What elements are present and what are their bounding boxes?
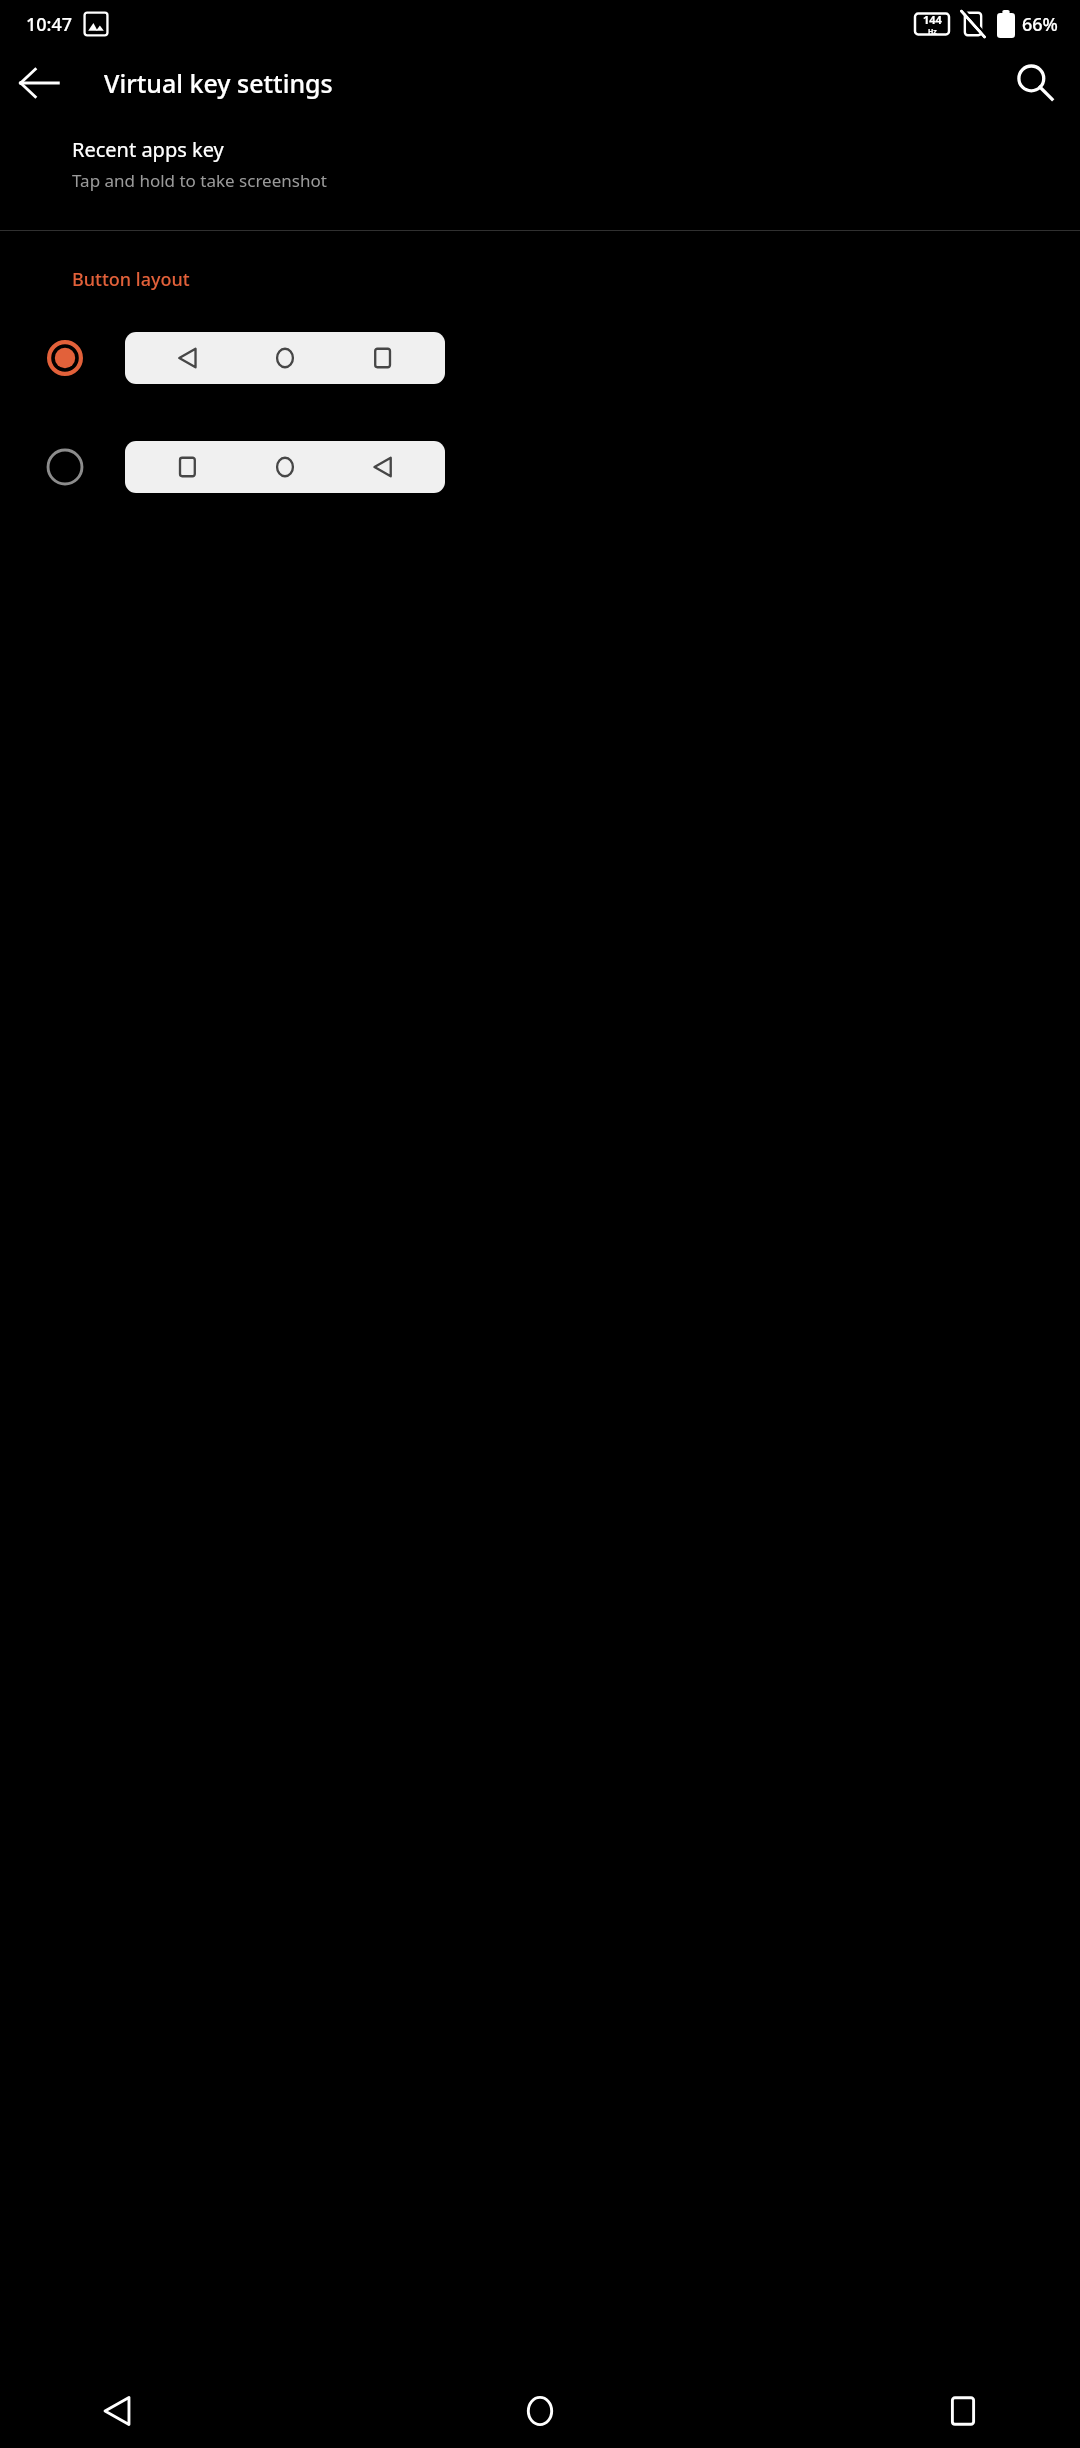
button[interactable]: Recent apps — [932, 2380, 994, 2442]
staticText: 144 — [923, 12, 942, 27]
button[interactable]: Recent apps key — [0, 118, 1080, 222]
button[interactable]: Search — [1004, 52, 1066, 114]
button[interactable] — [0, 320, 1080, 396]
staticText: Recent apps key — [72, 136, 224, 163]
staticText: Button layout — [72, 267, 190, 292]
staticText: 66% — [1022, 12, 1058, 37]
staticText: Tap and hold to take screenshot — [72, 169, 327, 192]
button[interactable]: Back — [86, 2380, 148, 2442]
staticText: 10:47 — [26, 12, 73, 37]
button[interactable] — [0, 429, 1080, 505]
button[interactable]: Home — [509, 2380, 571, 2442]
staticText: Virtual key settings — [104, 66, 333, 100]
staticText: Hz — [928, 27, 937, 37]
button[interactable]: Back — [8, 52, 70, 114]
